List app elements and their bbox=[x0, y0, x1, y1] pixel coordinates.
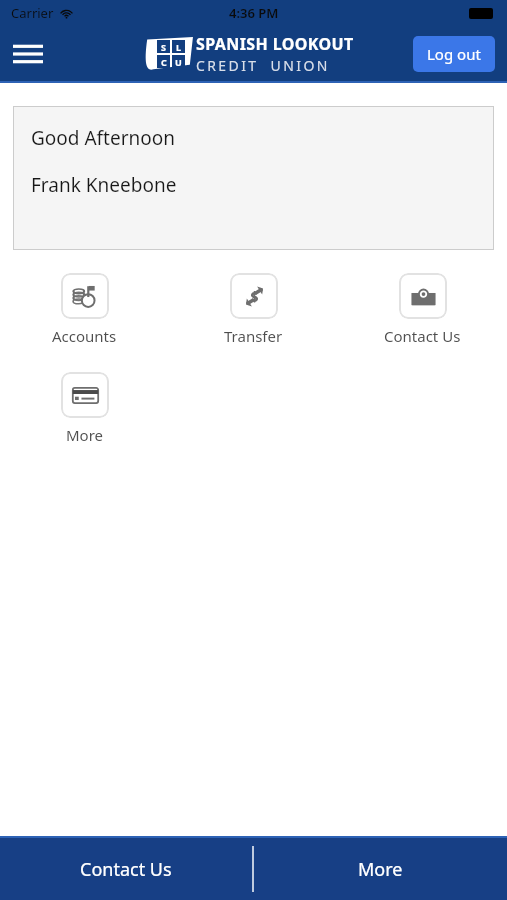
button[interactable]: Menu bbox=[8, 34, 48, 74]
staticText: U bbox=[175, 56, 182, 68]
button[interactable]: More bbox=[0, 370, 169, 447]
staticText: S bbox=[161, 41, 166, 53]
staticText: Transfer bbox=[224, 326, 283, 346]
staticText: Carrier bbox=[11, 4, 54, 22]
staticText: 4:36 PM bbox=[229, 4, 279, 22]
staticText: SPANISH LOOKOUT bbox=[196, 33, 354, 55]
staticText: Accounts bbox=[52, 326, 117, 346]
staticText: Good Afternoon bbox=[31, 125, 176, 151]
button[interactable]: More bbox=[254, 838, 507, 900]
staticText: L bbox=[176, 41, 182, 53]
button[interactable]: Accounts bbox=[0, 271, 169, 348]
staticText: Log out bbox=[427, 44, 481, 64]
staticText: More bbox=[358, 857, 403, 882]
button[interactable]: Transfer bbox=[169, 271, 338, 348]
button[interactable]: Contact Us bbox=[0, 838, 252, 900]
button[interactable]: Log out bbox=[413, 36, 495, 72]
staticText: More bbox=[66, 425, 104, 445]
staticText: CREDIT UNION bbox=[196, 56, 330, 75]
staticText: Contact Us bbox=[80, 857, 172, 882]
staticText: Frank Kneebone bbox=[31, 172, 177, 198]
button[interactable]: Contact Us bbox=[338, 271, 507, 348]
staticText: Contact Us bbox=[384, 326, 461, 346]
staticText: C bbox=[161, 56, 167, 68]
